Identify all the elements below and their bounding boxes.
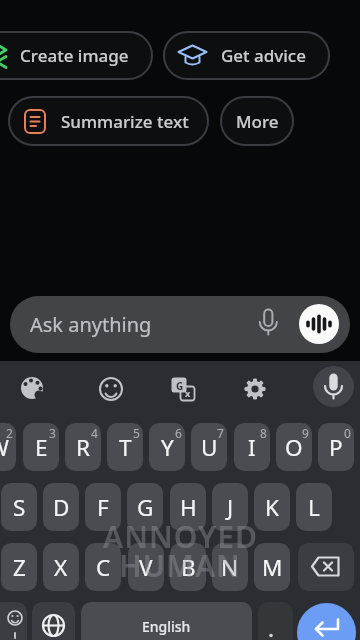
staticText: HUMAN (119, 545, 241, 581)
staticText: W (0, 432, 9, 463)
staticText: R (76, 432, 90, 463)
button[interactable]: L (296, 483, 332, 531)
staticText: J (227, 492, 234, 523)
staticText: More (236, 110, 279, 133)
staticText: 7 (217, 425, 224, 441)
button[interactable]: Y (149, 423, 185, 471)
staticText: T (119, 432, 132, 463)
staticText: X (54, 552, 68, 583)
button[interactable] (0, 602, 27, 640)
staticText: P (329, 432, 343, 463)
staticText: M (262, 552, 283, 583)
staticText: ANNOYED (103, 516, 258, 554)
staticText: G (137, 492, 154, 523)
button[interactable]: W (0, 423, 16, 471)
button[interactable]: U (191, 423, 227, 471)
button[interactable]: T (107, 423, 143, 471)
button[interactable]: Z (1, 543, 37, 591)
button[interactable] (298, 543, 354, 591)
staticText: 0 (344, 425, 351, 441)
staticText: U (201, 432, 218, 463)
button[interactable] (81, 602, 252, 640)
staticText: I (248, 432, 256, 463)
button[interactable]: G (127, 483, 163, 531)
staticText: Get advice (221, 44, 306, 67)
staticText: L (308, 492, 320, 523)
staticText: G (176, 379, 184, 393)
button[interactable]: X (43, 543, 79, 591)
staticText: 3 (49, 425, 56, 441)
button[interactable]: H (170, 483, 206, 531)
button[interactable]: M (254, 543, 290, 591)
staticText: E (35, 432, 48, 463)
button[interactable]: V (128, 543, 164, 591)
button[interactable] (297, 603, 356, 640)
staticText: V (139, 552, 153, 583)
staticText: O (285, 432, 303, 463)
staticText: K (265, 492, 279, 523)
staticText: 6 (175, 425, 182, 441)
button[interactable]: R (65, 423, 101, 471)
button[interactable] (0, 31, 153, 80)
staticText: 5 (133, 425, 140, 441)
button[interactable]: B (170, 543, 206, 591)
staticText: 2 (6, 425, 13, 441)
staticText: C (96, 552, 111, 583)
button[interactable] (299, 304, 339, 344)
staticText: Summarize text (61, 110, 189, 133)
staticText: 9 (302, 425, 309, 441)
staticText: x (185, 387, 191, 399)
staticText: Z (13, 552, 26, 583)
button[interactable] (258, 602, 293, 640)
staticText: 8 (260, 425, 267, 441)
staticText: S (13, 492, 26, 523)
staticText: B (181, 552, 196, 583)
button[interactable] (163, 31, 330, 80)
button[interactable]: P (318, 423, 354, 471)
button[interactable]: K (254, 483, 290, 531)
staticText: English (142, 617, 191, 636)
staticText: F (97, 492, 109, 523)
button[interactable]: D (43, 483, 79, 531)
button[interactable]: I (234, 423, 270, 471)
button[interactable] (8, 96, 209, 146)
button[interactable] (220, 96, 294, 146)
button[interactable]: J (212, 483, 248, 531)
staticText: Ask anything (30, 311, 152, 338)
button[interactable]: C (85, 543, 121, 591)
staticText: Create image (20, 44, 129, 67)
button[interactable] (32, 602, 75, 640)
button[interactable] (10, 296, 350, 353)
staticText: H (180, 492, 197, 523)
staticText: Y (161, 432, 174, 463)
button[interactable]: N (212, 543, 248, 591)
staticText: N (221, 552, 239, 583)
button[interactable]: E (23, 423, 59, 471)
button[interactable]: O (276, 423, 312, 471)
staticText: 4 (91, 425, 98, 441)
button[interactable]: S (1, 483, 37, 531)
staticText: D (53, 492, 70, 523)
button[interactable]: F (85, 483, 121, 531)
